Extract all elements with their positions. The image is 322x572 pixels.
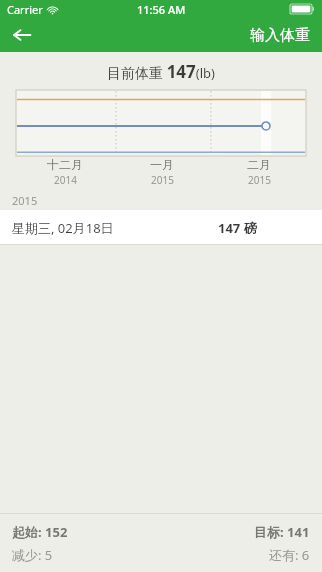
staticText: 还有: 6 [269, 546, 310, 564]
staticText: Carrier [7, 2, 43, 17]
staticText: 11:56 AM [137, 2, 186, 17]
staticText: 2015 [151, 173, 174, 187]
button[interactable]: 输入体重 [250, 26, 310, 45]
staticText: 目标: 141 [254, 523, 310, 541]
staticText: 起始: 152 [12, 523, 68, 541]
staticText: 减少: 5 [12, 546, 53, 564]
staticText: 2015 [12, 193, 38, 208]
staticText: 2014 [54, 173, 77, 187]
staticText: 二月 [247, 157, 271, 172]
staticText: 2015 [248, 173, 271, 187]
staticText: 147 磅 [218, 219, 257, 237]
staticText: 一月 [150, 157, 174, 172]
button[interactable]: Back [0, 18, 44, 52]
staticText: 输入体重 [250, 26, 310, 45]
staticText: 十二月 [47, 157, 83, 172]
staticText: 星期三, 02月18日 [12, 219, 114, 237]
staticText: 目前体重 147(lb) [107, 60, 215, 83]
button[interactable]: 星期三, 02月18日 [0, 210, 322, 245]
